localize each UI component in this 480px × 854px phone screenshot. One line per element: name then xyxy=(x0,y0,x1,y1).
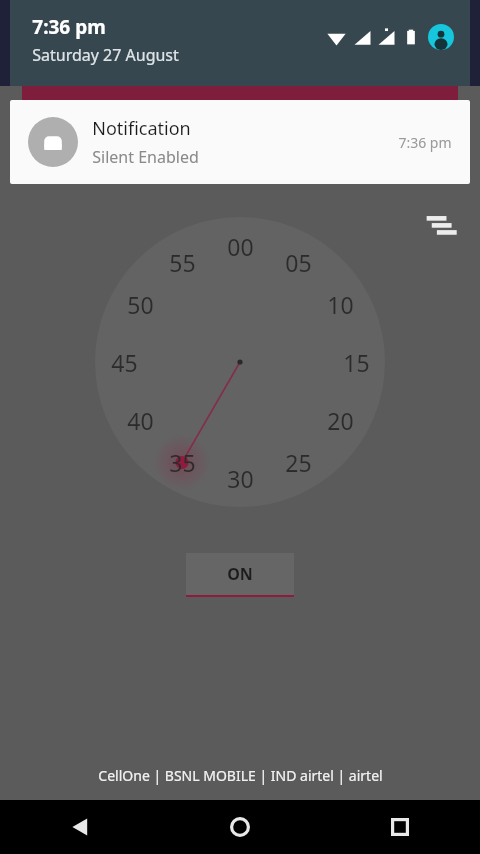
staticText: 20 xyxy=(327,405,354,436)
button[interactable]: Account xyxy=(428,24,454,50)
staticText: 7:36 pm xyxy=(32,14,106,40)
staticText: 35 xyxy=(169,447,196,478)
staticText: 7:36 pm xyxy=(398,133,452,152)
button[interactable]: ON xyxy=(186,553,294,597)
staticText: 40 xyxy=(127,405,154,436)
staticText: Silent Enabled xyxy=(92,146,199,168)
staticText: 30 xyxy=(227,463,254,494)
staticText: 10 xyxy=(327,289,354,320)
staticText: 15 xyxy=(343,347,370,378)
button[interactable]: Back xyxy=(0,800,160,854)
staticText: CellOne | BSNL MOBILE | IND airtel | air… xyxy=(98,766,383,785)
button[interactable]: Home xyxy=(160,800,320,854)
button[interactable]: Notification xyxy=(10,100,470,184)
staticText: 00 xyxy=(227,231,254,262)
staticText: 25 xyxy=(285,447,312,478)
staticText: Notification xyxy=(92,116,191,141)
button[interactable]: Recents xyxy=(320,800,480,854)
staticText: 50 xyxy=(127,289,154,320)
staticText: 05 xyxy=(285,247,312,278)
staticText: 45 xyxy=(111,347,138,378)
staticText: ON xyxy=(227,563,253,585)
staticText: Saturday 27 August xyxy=(32,44,179,66)
staticText: 55 xyxy=(169,247,196,278)
button[interactable]: Menu xyxy=(420,203,464,247)
